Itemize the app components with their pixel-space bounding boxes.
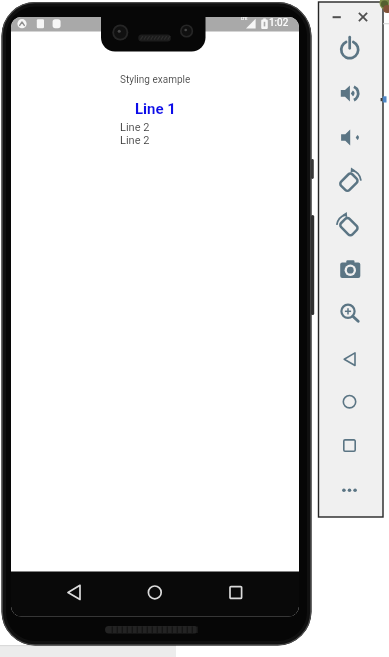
staticText: Styling example xyxy=(120,74,191,86)
staticText: LTE xyxy=(241,16,248,21)
button[interactable] xyxy=(336,345,364,373)
staticText: Line 2 xyxy=(120,121,150,134)
button[interactable] xyxy=(336,35,364,63)
button[interactable] xyxy=(336,123,364,151)
button[interactable] xyxy=(336,297,364,325)
button[interactable] xyxy=(54,578,94,607)
button[interactable] xyxy=(336,388,364,416)
button[interactable] xyxy=(135,578,175,607)
button[interactable] xyxy=(356,10,370,24)
button[interactable] xyxy=(336,431,364,459)
button[interactable] xyxy=(336,476,364,504)
button[interactable] xyxy=(336,168,364,196)
button[interactable] xyxy=(336,212,364,240)
button[interactable] xyxy=(336,256,364,284)
staticText: Line 2 xyxy=(120,134,150,147)
button[interactable] xyxy=(336,80,364,108)
staticText: Line 1 xyxy=(135,100,176,118)
staticText: 1:02 xyxy=(269,17,289,29)
button[interactable] xyxy=(327,10,341,24)
button[interactable] xyxy=(216,578,256,607)
